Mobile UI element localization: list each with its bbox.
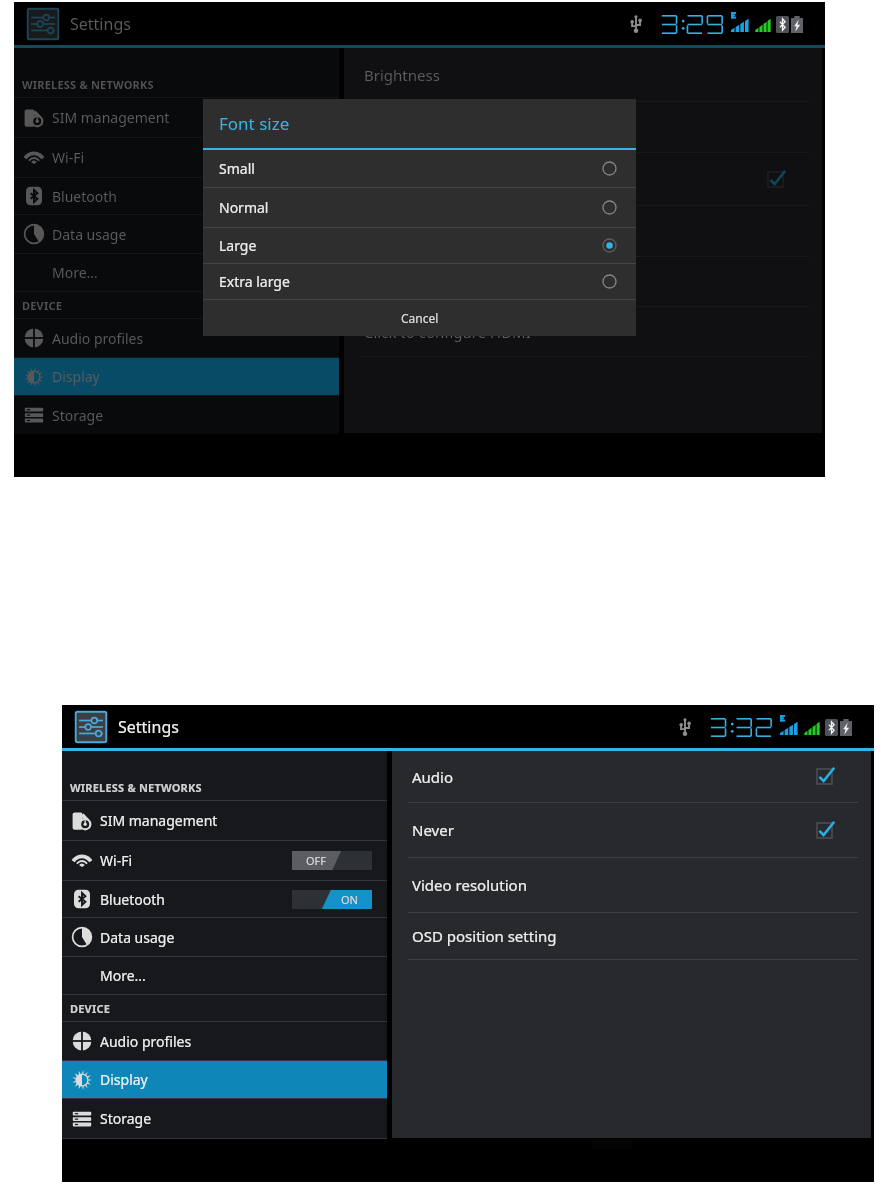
staticText: DEVICE — [70, 1001, 111, 1016]
button[interactable]: Data usage — [62, 918, 387, 956]
button[interactable]: Wi-Fi — [14, 138, 339, 177]
button[interactable]: Wi-Fi — [62, 841, 387, 880]
staticText: Brightness — [364, 65, 440, 85]
button[interactable]: SIM management — [62, 801, 387, 840]
staticText: Audio profiles — [100, 1032, 192, 1051]
button[interactable]: Audio — [392, 751, 871, 802]
button[interactable]: Normal — [203, 188, 636, 227]
button[interactable]: Font size — [344, 102, 822, 152]
button[interactable]: SIM management — [14, 98, 339, 137]
staticText: Extra large — [219, 272, 290, 291]
button[interactable]: Toggle — [768, 172, 783, 187]
button[interactable]: OSD position setting — [392, 913, 871, 959]
button[interactable]: Toggle — [344, 153, 822, 205]
button[interactable]: Audio profiles — [62, 1022, 387, 1060]
staticText: Small — [219, 159, 255, 178]
staticText: Audio — [412, 767, 454, 787]
staticText: Cancel — [401, 310, 439, 326]
button[interactable]: More... — [62, 957, 387, 994]
staticText: Storage — [100, 1109, 152, 1128]
button[interactable]: Settings — [26, 7, 60, 41]
staticText: Bluetooth — [52, 187, 117, 206]
button[interactable]: Toggle — [817, 823, 832, 838]
staticText: ON — [341, 892, 358, 907]
staticText: More... — [52, 263, 98, 282]
button[interactable]: Extra large — [203, 264, 636, 299]
staticText: WIRELESS & NETWORKS — [22, 77, 154, 92]
staticText: OFF — [306, 853, 327, 868]
button[interactable]: Large — [203, 228, 636, 263]
button[interactable]: Audio profiles — [14, 319, 339, 357]
staticText: Wi-Fi — [100, 851, 133, 870]
staticText: Click to configure HDMI — [364, 322, 531, 342]
button[interactable]: Data usage — [14, 215, 339, 253]
button[interactable]: Cancel — [203, 300, 636, 336]
button[interactable]: Display — [62, 1061, 387, 1098]
button[interactable]: Video resolution — [392, 858, 871, 912]
staticText: Settings — [118, 716, 179, 738]
staticText: WIRELESS & NETWORKS — [70, 780, 202, 795]
button[interactable]: Storage — [62, 1099, 387, 1138]
button[interactable]: Never — [392, 803, 871, 857]
button[interactable] — [344, 206, 822, 256]
staticText: Never — [412, 820, 454, 840]
staticText: Normal — [219, 198, 269, 217]
staticText: Data usage — [52, 225, 127, 244]
button[interactable]: Bluetooth — [62, 881, 387, 917]
button[interactable]: Toggle — [817, 769, 832, 784]
staticText: Video resolution — [412, 875, 527, 895]
staticText: More... — [100, 966, 146, 985]
button[interactable] — [344, 257, 822, 306]
button[interactable]: Display — [14, 358, 339, 395]
staticText: OSD position setting — [412, 926, 557, 946]
button[interactable]: On — [292, 890, 372, 909]
button[interactable]: Settings — [74, 710, 108, 744]
staticText: Bluetooth — [100, 890, 165, 909]
button[interactable]: Bluetooth — [14, 178, 339, 214]
staticText: Settings — [70, 13, 131, 35]
button[interactable]: Click to configure HDMI — [344, 307, 822, 356]
staticText: SIM management — [100, 811, 218, 830]
staticText: Font size — [219, 112, 290, 135]
staticText: Display — [52, 367, 100, 386]
staticText: Data usage — [100, 928, 175, 947]
staticText: Wi-Fi — [52, 148, 85, 167]
staticText: SIM management — [52, 108, 170, 127]
button[interactable]: Brightness — [344, 48, 822, 101]
button[interactable]: More... — [14, 254, 339, 291]
button[interactable]: Small — [203, 150, 636, 187]
staticText: Display — [100, 1070, 148, 1089]
staticText: DEVICE — [22, 298, 63, 313]
staticText: Large — [219, 236, 257, 255]
button[interactable]: Storage — [14, 396, 339, 434]
staticText: Audio profiles — [52, 329, 144, 348]
button[interactable]: Off — [292, 851, 372, 870]
staticText: Storage — [52, 406, 104, 425]
